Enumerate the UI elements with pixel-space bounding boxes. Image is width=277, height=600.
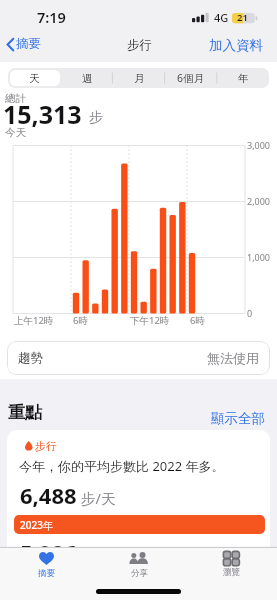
button[interactable]: 摘要 <box>6 36 41 52</box>
staticText: 今年，你的平均步數比 2022 年多。 <box>19 457 225 475</box>
staticText: 重點 <box>8 402 42 423</box>
button[interactable]: 顯示全部 <box>211 410 265 427</box>
button[interactable]: 瀏覽 <box>185 547 277 581</box>
button[interactable]: 摘要 <box>0 547 93 581</box>
staticText: 3,000 <box>247 139 271 151</box>
staticText: 分享 <box>131 568 148 579</box>
staticText: 4G <box>214 10 229 25</box>
staticText: 6時 <box>73 314 88 327</box>
staticText: 7:19 <box>37 7 66 27</box>
button[interactable]: 週 <box>61 68 113 88</box>
staticText: 0 <box>247 307 253 319</box>
staticText: 2023年 <box>20 518 53 532</box>
staticText: 瀏覽 <box>223 567 240 578</box>
button[interactable] <box>7 430 270 600</box>
staticText: 年 <box>238 72 249 85</box>
staticText: 上午12時 <box>14 314 54 327</box>
staticText: 週 <box>82 72 93 85</box>
staticText: 無法使用 <box>207 350 259 366</box>
button[interactable]: 6個月 <box>165 68 217 88</box>
staticText: 6個月 <box>177 71 205 85</box>
staticText: 下午12時 <box>130 314 170 327</box>
staticText: 21 <box>237 11 248 24</box>
staticText: 摘要 <box>38 568 55 579</box>
button[interactable] <box>10 70 60 86</box>
staticText: 步/天 <box>81 488 116 508</box>
staticText: 2,000 <box>247 195 271 207</box>
staticText: 總計 <box>5 92 26 105</box>
staticText: 天 <box>29 72 40 85</box>
staticText: 月 <box>134 72 145 85</box>
staticText: 步行 <box>127 37 152 53</box>
staticText: 5,986 <box>20 537 77 567</box>
staticText: 6時 <box>190 314 205 327</box>
staticText: 趨勢 <box>18 350 43 366</box>
button[interactable]: 趨勢 <box>7 341 270 375</box>
button[interactable]: 月 <box>113 68 165 88</box>
staticText: 今天 <box>5 126 26 139</box>
staticText: 6,488 <box>20 480 77 510</box>
button[interactable]: 年 <box>217 68 269 88</box>
button[interactable]: 分享 <box>93 547 185 581</box>
staticText: 步 <box>89 109 103 127</box>
staticText: 步行 <box>35 439 57 453</box>
staticText: 15,313 <box>3 97 82 131</box>
button[interactable]: 天 <box>8 68 61 88</box>
staticText: 摘要 <box>16 36 41 52</box>
button[interactable]: 加入資料 <box>209 37 263 54</box>
staticText: 1,000 <box>247 251 271 263</box>
